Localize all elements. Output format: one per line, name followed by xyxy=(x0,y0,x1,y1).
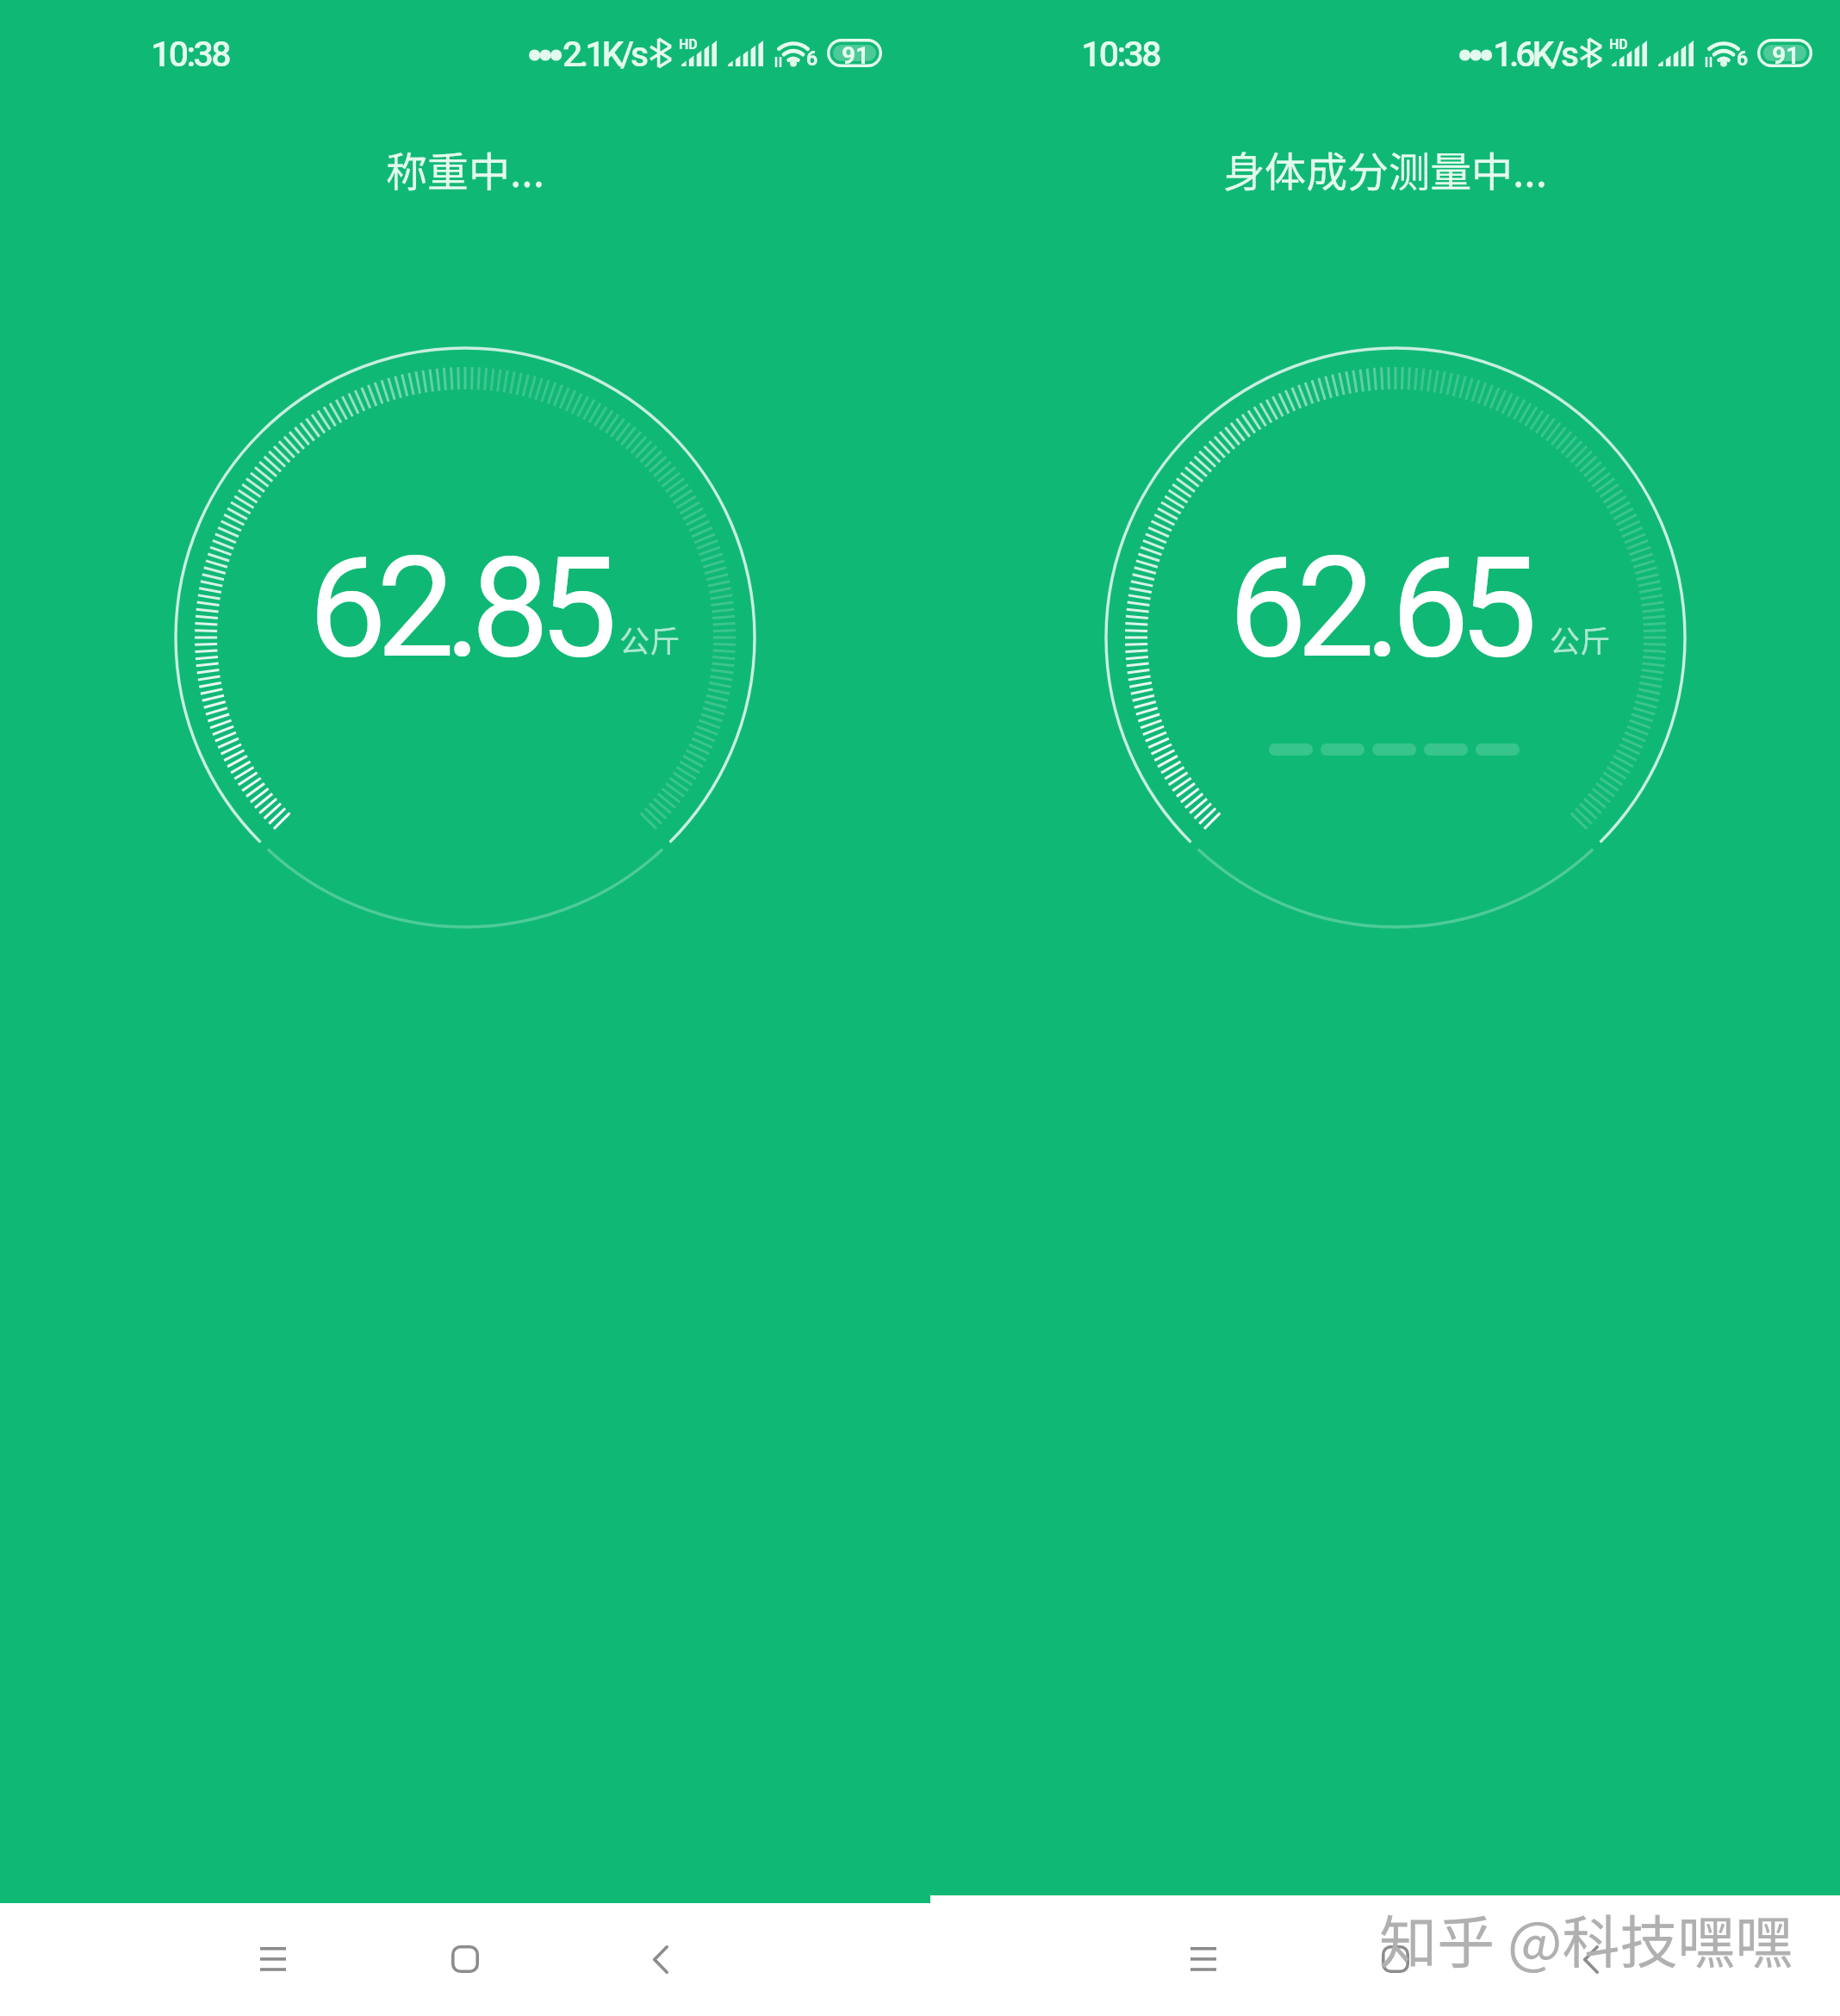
staticText: 62.65 xyxy=(1228,526,1527,690)
button[interactable]: Back xyxy=(1548,1916,1634,2002)
staticText: 6 xyxy=(806,47,818,71)
button[interactable]: Recent apps xyxy=(1160,1916,1246,2002)
staticText: 公斤 xyxy=(619,617,681,661)
button[interactable]: Recent apps xyxy=(230,1916,316,2002)
button[interactable]: Home xyxy=(422,1916,508,2002)
staticText: 62.85 xyxy=(308,526,607,690)
staticText: 知乎 @科技嘿嘿 xyxy=(1379,1896,1793,1980)
staticText: 称重中... xyxy=(386,139,545,199)
button[interactable]: Home xyxy=(1352,1916,1439,2002)
staticText: 10:38 xyxy=(151,34,230,75)
staticText: 公斤 xyxy=(1550,617,1611,661)
staticText: HD xyxy=(1609,36,1628,53)
staticText: 2.1K/s xyxy=(563,34,645,75)
staticText: 1.6K/s xyxy=(1493,34,1576,75)
button[interactable]: Back xyxy=(618,1916,704,2002)
staticText: 10:38 xyxy=(1081,34,1160,75)
staticText: 91 xyxy=(842,41,870,70)
staticText: 91 xyxy=(1772,41,1800,70)
staticText: 6 xyxy=(1737,47,1749,71)
staticText: HD xyxy=(679,36,698,53)
staticText: 身体成分测量中... xyxy=(1223,139,1548,199)
